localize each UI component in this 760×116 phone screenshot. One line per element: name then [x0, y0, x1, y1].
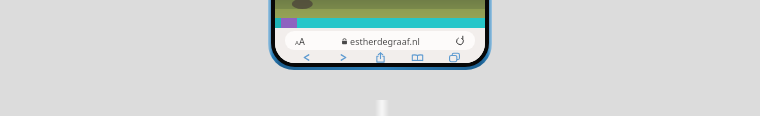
button[interactable]: Bookmarks [399, 52, 436, 63]
button[interactable]: Tabs [436, 52, 473, 63]
button[interactable]: Reload [445, 31, 475, 50]
staticText: estherdegraaf.nl [350, 35, 420, 47]
button[interactable]: Share [362, 52, 399, 63]
staticText: A [295, 39, 299, 47]
button[interactable]: A [285, 31, 475, 50]
button[interactable]: Forward [325, 52, 362, 63]
button[interactable]: Back [287, 52, 325, 63]
staticText: A [299, 35, 305, 47]
